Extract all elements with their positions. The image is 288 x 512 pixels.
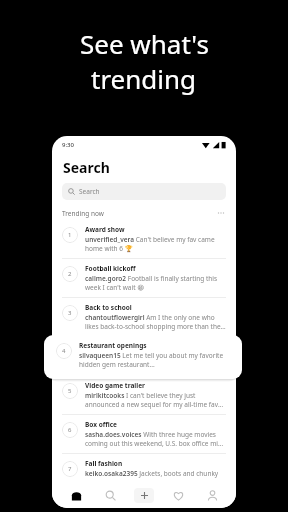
staticText: Award show [85, 225, 125, 234]
staticText: 1 [68, 231, 72, 239]
button[interactable]: Search [62, 183, 226, 200]
staticText: 7 [68, 465, 72, 473]
button[interactable]: 3 [52, 298, 236, 336]
staticText: Trending now [62, 209, 104, 218]
staticText: Football kickoff [85, 264, 136, 273]
staticText: Restaurant openings [85, 342, 153, 351]
button[interactable]: Home [66, 485, 86, 505]
button[interactable]: 1 [52, 220, 236, 258]
button[interactable]: Likes [168, 485, 188, 505]
staticText: 4 [68, 348, 72, 356]
button[interactable]: Profile [202, 485, 222, 505]
staticText: Search [63, 158, 110, 177]
button[interactable]: More options [216, 208, 226, 218]
staticText: See what's [80, 26, 209, 61]
staticText: 4 [62, 347, 66, 355]
staticText: Restaurant openings [79, 341, 147, 350]
button[interactable]: 4 [52, 337, 236, 375]
staticText: sasha.does.voices With three huge movies… [85, 430, 226, 448]
staticText: chantoutflowergirl Am I the only one who… [85, 313, 226, 331]
staticText: 6 [68, 426, 72, 434]
button[interactable]: Search [100, 485, 120, 505]
staticText: 9:30 [62, 141, 74, 149]
staticText: mirlkitcooks I can't believe they just a… [85, 391, 226, 409]
button[interactable]: 7 [52, 454, 236, 483]
button[interactable]: 6 [52, 415, 236, 453]
staticText: silvaqueen15 Let me tell you about my fa… [79, 351, 232, 369]
staticText: 2 [68, 270, 72, 278]
staticText: 3 [68, 309, 72, 317]
staticText: keiko.osaka2395 Jackets, boots and chunk… [85, 469, 219, 478]
staticText: Video game trailer [85, 381, 145, 390]
button[interactable]: 4 [44, 335, 242, 379]
staticText: silvaqueen15 Let me tell you about my fa… [85, 352, 226, 370]
button[interactable]: Create [134, 488, 154, 503]
staticText: Search [79, 187, 100, 196]
staticText: callme.goro2 Football is finally startin… [85, 274, 226, 292]
staticText: trending [91, 61, 197, 96]
button[interactable]: 5 [52, 376, 236, 414]
staticText: Back to school [85, 303, 132, 312]
staticText: 5 [68, 387, 72, 395]
staticText: Box office [85, 420, 117, 429]
button[interactable]: 2 [52, 259, 236, 297]
staticText: unverified_vera Can't believe my fav cam… [85, 235, 226, 253]
staticText: Fall fashion [85, 459, 123, 468]
